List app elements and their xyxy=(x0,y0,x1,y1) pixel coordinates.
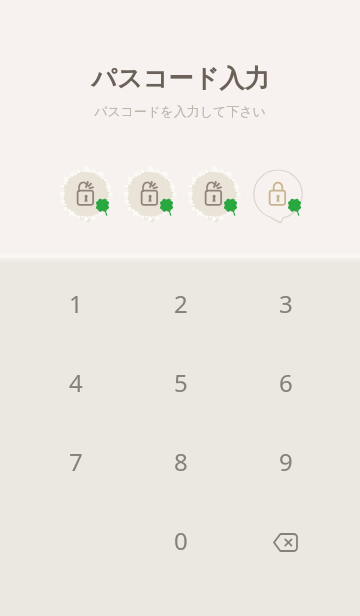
staticText: 2 xyxy=(174,287,188,320)
button[interactable]: 2 xyxy=(128,264,233,343)
button[interactable]: Passcode digit 4 xyxy=(246,171,310,226)
button[interactable]: 7 xyxy=(0,422,128,501)
button[interactable]: 8 xyxy=(128,422,233,501)
button[interactable]: Passcode digit 2 xyxy=(118,171,182,226)
button[interactable]: 3 xyxy=(233,264,360,343)
button[interactable]: Passcode digit 1 xyxy=(54,171,118,226)
button[interactable]: 4 xyxy=(0,343,128,422)
staticText: パスコードを入力して下さい xyxy=(94,103,266,119)
staticText: 4 xyxy=(69,366,83,399)
staticText: パスコード入力 xyxy=(91,63,270,94)
button[interactable]: Backspace xyxy=(233,501,360,580)
staticText: 9 xyxy=(279,445,293,478)
staticText: 1 xyxy=(69,287,83,320)
button[interactable]: Passcode digit 3 xyxy=(182,171,246,226)
button[interactable]: 6 xyxy=(233,343,360,422)
staticText: 6 xyxy=(279,366,293,399)
button[interactable]: 5 xyxy=(128,343,233,422)
staticText: 7 xyxy=(69,445,83,478)
staticText: 8 xyxy=(174,445,188,478)
staticText: 0 xyxy=(174,524,188,557)
staticText: 3 xyxy=(279,287,293,320)
other: Backspace xyxy=(273,533,298,552)
button[interactable]: 1 xyxy=(0,264,128,343)
button[interactable]: 0 xyxy=(128,501,233,580)
staticText: 5 xyxy=(174,366,188,399)
button[interactable]: 9 xyxy=(233,422,360,501)
